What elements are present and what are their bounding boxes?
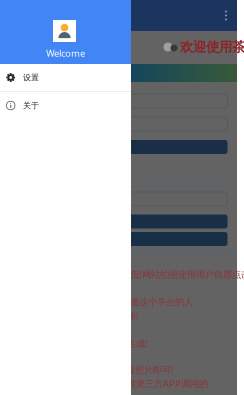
staticText: 欢迎使用茶馆照片外链 (180, 39, 244, 55)
button[interactable]: 复制外链 (2, 214, 227, 228)
staticText: 本站严禁上传违规图片,请维权知道这个平台的人 (1, 296, 193, 308)
staticText: 如有侵权请联系本站下方邮箱删除! (1, 309, 139, 322)
button[interactable]: 设置 (0, 64, 131, 91)
button[interactable]: More options (215, 0, 237, 31)
staticText: 本站只提供图片外链服务,如果自负!网站拍照使用用户自愿点击允 (1, 268, 244, 280)
staticText: 设置 (23, 73, 39, 82)
staticText: 外链支持微信、QQ,然后点击查看照片即可! (1, 364, 174, 376)
staticText: 图片上传成功后不用管直接点击生成! (1, 337, 148, 349)
button[interactable]: 清空内容 (2, 232, 227, 246)
button[interactable]: 上传图片 (2, 140, 227, 154)
staticText: 关于 (23, 101, 39, 110)
staticText: Welcome (46, 47, 85, 59)
staticText: 部分手机需使用Safari浏览器(或者第三方APP调用的 (1, 377, 208, 390)
button[interactable]: 关于 (0, 92, 131, 119)
